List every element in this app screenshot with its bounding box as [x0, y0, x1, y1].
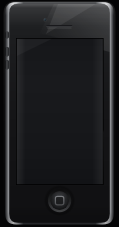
- button[interactable]: Home button: [48, 203, 72, 227]
- button[interactable]: Black smartphone product image: [0, 0, 119, 227]
